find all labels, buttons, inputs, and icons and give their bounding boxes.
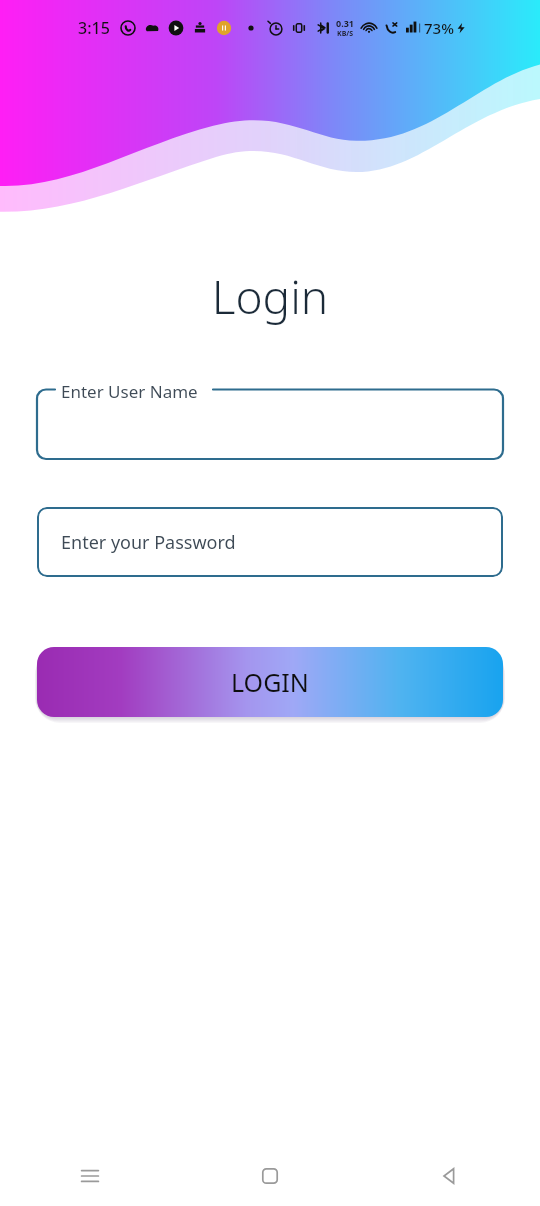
staticText: Enter your Password — [61, 530, 236, 555]
button[interactable]: Back — [360, 1146, 540, 1206]
button[interactable]: LOGIN — [37, 647, 503, 717]
button[interactable]: Home — [180, 1146, 360, 1206]
staticText: 73% — [424, 18, 454, 38]
button[interactable]: Enter your Password — [37, 507, 503, 577]
staticText: Enter User Name — [61, 380, 198, 403]
button[interactable]: Recent apps — [0, 1146, 180, 1206]
staticText: Login — [0, 265, 540, 328]
staticText: KB/S — [337, 29, 354, 39]
button[interactable]: Enter User Name — [37, 381, 503, 459]
staticText: LOGIN — [231, 665, 309, 699]
staticText: 3:15 — [78, 17, 110, 39]
staticText: 0.31 — [336, 17, 354, 29]
